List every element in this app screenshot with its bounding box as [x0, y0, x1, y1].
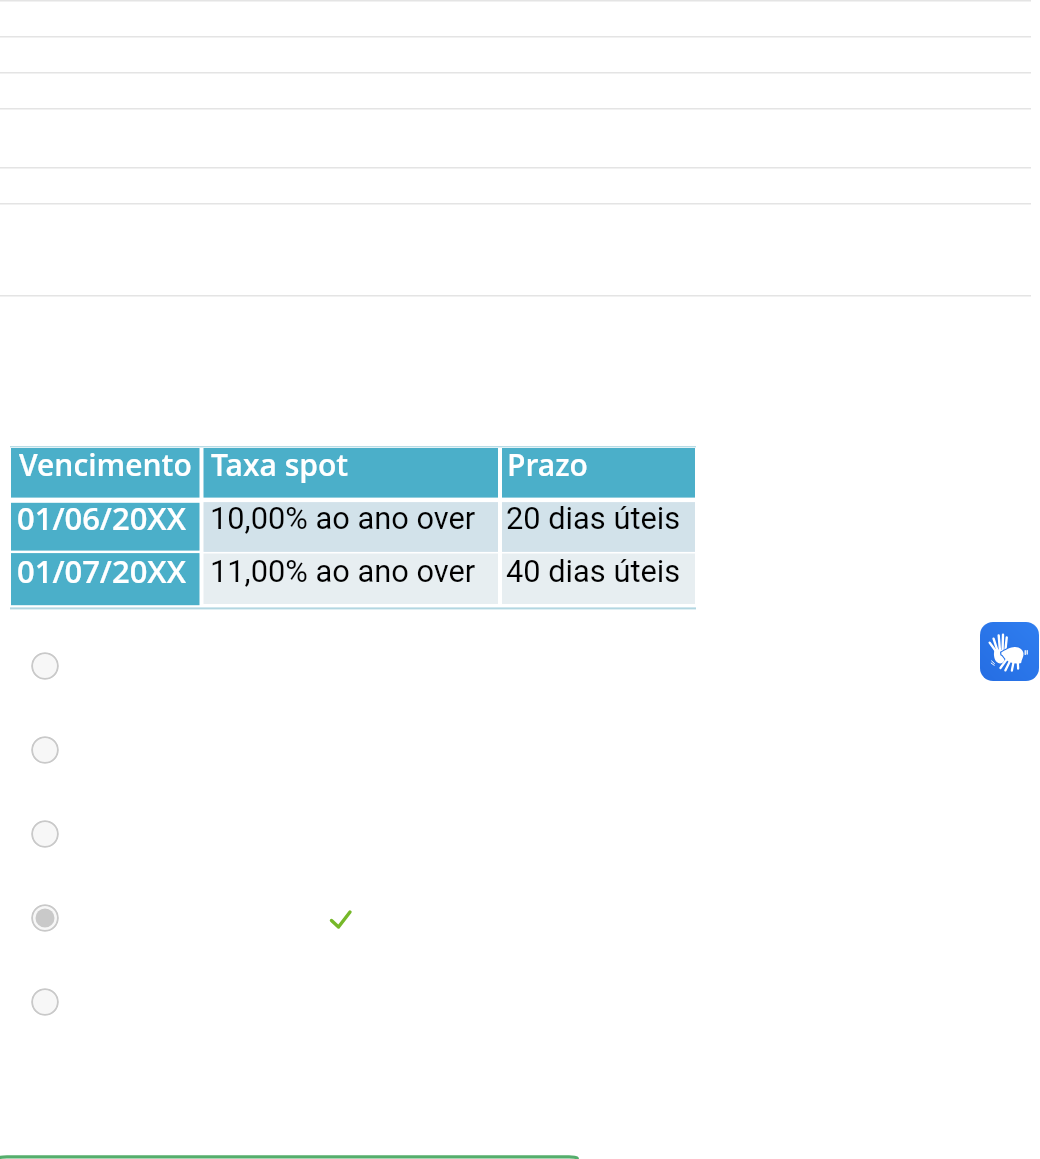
staticText: 11,00% ao ano over [210, 553, 476, 589]
staticText: 20 dias úteis [506, 500, 681, 536]
button[interactable]: Option 2 [31, 736, 59, 764]
staticText: 01/06/20XX [17, 497, 186, 539]
staticText: 01/07/20XX [17, 550, 186, 592]
staticText: Taxa spot [211, 444, 349, 485]
staticText: 10,00% ao ano over [210, 500, 476, 536]
button[interactable]: Option 4 [31, 904, 59, 932]
staticText: 40 dias úteis [506, 553, 681, 589]
button[interactable]: Option 3 [31, 820, 59, 848]
button[interactable]: Option 5 [31, 988, 59, 1016]
staticText: Prazo [507, 444, 588, 485]
button[interactable]: Option 1 [31, 652, 59, 680]
button[interactable]: VLibras sign language translator [980, 622, 1039, 681]
staticText: Vencimento [19, 444, 192, 485]
